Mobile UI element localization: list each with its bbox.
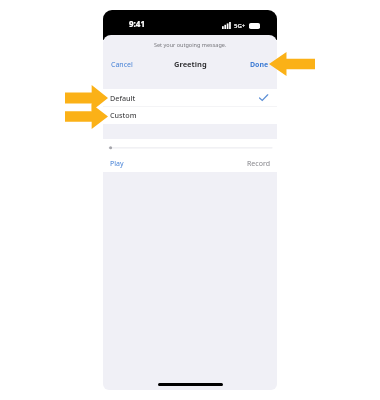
button[interactable]: Default: [103, 89, 277, 106]
staticText: Play: [110, 159, 124, 169]
other: Selected: [259, 94, 268, 102]
staticText: Record: [247, 159, 270, 169]
staticText: Greeting: [174, 59, 207, 69]
button[interactable]: Done: [246, 57, 273, 73]
staticText: 5G+: [234, 22, 246, 30]
button[interactable]: Custom: [103, 106, 277, 124]
button[interactable]: Record: [243, 156, 274, 172]
staticText: Cancel: [111, 60, 133, 70]
button[interactable]: Play: [106, 156, 128, 172]
staticText: Custom: [110, 110, 137, 120]
staticText: Done: [250, 60, 269, 70]
button[interactable]: Cancel: [107, 57, 137, 73]
staticText: Default: [110, 93, 136, 103]
staticText: Set your outgoing message.: [154, 41, 227, 48]
staticText: 9:41: [129, 18, 145, 29]
